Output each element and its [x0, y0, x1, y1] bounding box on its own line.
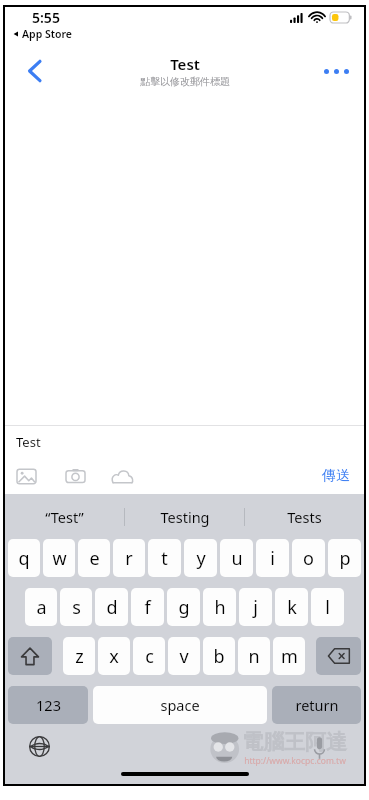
staticText: 電腦王阿達: [242, 729, 347, 755]
button[interactable]: d: [95, 588, 128, 626]
button[interactable]: Change keyboard: [23, 730, 55, 762]
button[interactable]: “Test”: [5, 498, 124, 536]
button[interactable]: p: [328, 539, 361, 577]
staticText: q: [18, 546, 30, 571]
button[interactable]: l: [311, 588, 344, 626]
button[interactable]: e: [78, 539, 110, 577]
button[interactable]: Tests: [245, 498, 364, 536]
button[interactable]: q: [8, 539, 40, 577]
staticText: 5:55: [32, 8, 60, 27]
staticText: 123: [36, 695, 61, 715]
button[interactable]: More options: [314, 49, 358, 93]
button[interactable]: Shift: [8, 637, 52, 675]
button[interactable]: r: [113, 539, 145, 577]
staticText: App Store: [22, 27, 72, 41]
button[interactable]: g: [167, 588, 200, 626]
staticText: 傳送: [322, 467, 350, 485]
staticText: o: [303, 546, 314, 571]
staticText: p: [339, 546, 351, 571]
staticText: i: [270, 546, 275, 571]
button[interactable]: a: [25, 588, 57, 626]
staticText: k: [287, 595, 297, 620]
button[interactable]: u: [220, 539, 253, 577]
button[interactable]: v: [168, 637, 200, 675]
staticText: n: [248, 644, 260, 669]
button[interactable]: b: [203, 637, 235, 675]
staticText: m: [281, 644, 298, 669]
button[interactable]: f: [131, 588, 164, 626]
staticText: d: [106, 595, 118, 620]
button[interactable]: z: [63, 637, 95, 675]
staticText: h: [214, 595, 226, 620]
button[interactable]: Back: [13, 50, 55, 92]
staticText: Testing: [160, 507, 210, 527]
staticText: u: [231, 546, 243, 571]
staticText: Test: [170, 54, 200, 74]
button[interactable]: m: [273, 637, 305, 675]
staticText: j: [253, 595, 258, 620]
staticText: return: [295, 695, 339, 715]
staticText: space: [160, 695, 200, 715]
button[interactable]: s: [60, 588, 92, 626]
button[interactable]: 123: [8, 686, 88, 724]
staticText: t: [161, 546, 168, 571]
staticText: r: [125, 546, 133, 571]
button[interactable]: Insert photo: [13, 463, 39, 489]
button[interactable]: Cloud attachment: [109, 463, 135, 489]
button[interactable]: Take photo: [62, 463, 88, 489]
staticText: http://www.kocpc.com.tw: [244, 755, 346, 767]
staticText: x: [109, 644, 119, 669]
button[interactable]: c: [133, 637, 165, 675]
staticText: e: [89, 546, 100, 571]
button[interactable]: space: [93, 686, 267, 724]
button[interactable]: j: [239, 588, 272, 626]
button[interactable]: Testing: [125, 498, 244, 536]
staticText: a: [36, 595, 47, 620]
staticText: l: [325, 595, 330, 620]
staticText: w: [52, 546, 67, 571]
staticText: s: [72, 595, 81, 620]
button[interactable]: o: [292, 539, 325, 577]
staticText: Test: [16, 433, 41, 451]
button[interactable]: y: [184, 539, 217, 577]
button[interactable]: Delete: [316, 637, 361, 675]
staticText: v: [179, 644, 189, 669]
button[interactable]: i: [256, 539, 289, 577]
button[interactable]: k: [275, 588, 308, 626]
button[interactable]: t: [148, 539, 181, 577]
staticText: 點擊以修改郵件標題: [140, 75, 230, 88]
button[interactable]: w: [43, 539, 75, 577]
staticText: Tests: [287, 507, 322, 527]
staticText: f: [144, 595, 151, 620]
button[interactable]: x: [98, 637, 130, 675]
button[interactable]: h: [203, 588, 236, 626]
staticText: g: [178, 595, 190, 620]
button[interactable]: return: [272, 686, 361, 724]
staticText: “Test”: [45, 507, 84, 527]
button[interactable]: n: [238, 637, 270, 675]
staticText: b: [213, 644, 225, 669]
button[interactable]: 傳送: [322, 467, 350, 485]
staticText: c: [145, 644, 154, 669]
staticText: y: [196, 546, 206, 571]
staticText: z: [75, 644, 84, 669]
